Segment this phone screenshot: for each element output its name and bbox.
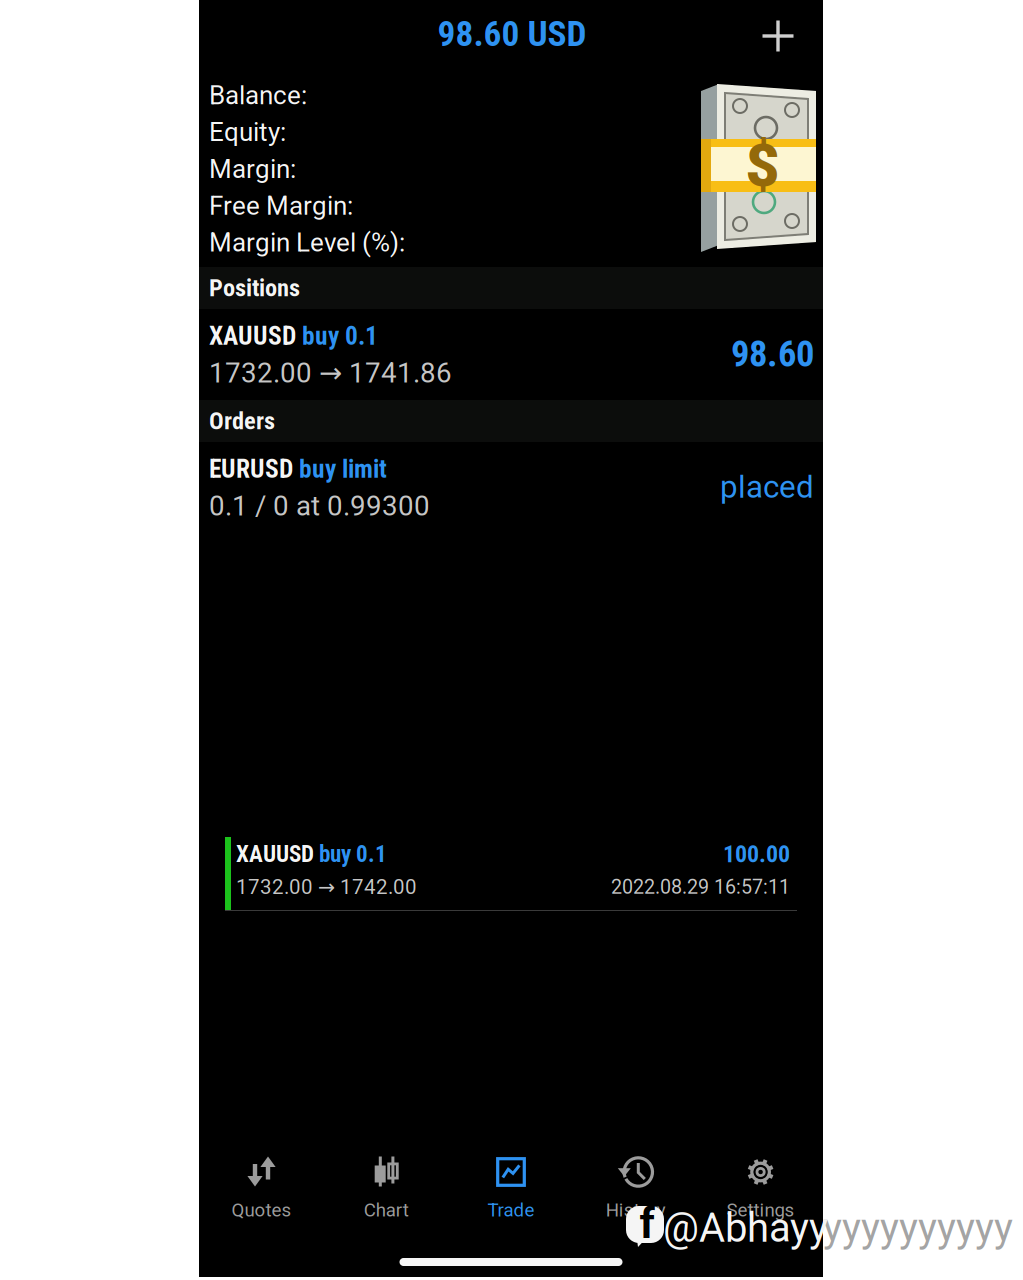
button[interactable]: EURUSD: [199, 442, 823, 533]
staticText: 0.1 / 0 at 0.99300: [209, 490, 430, 522]
button[interactable]: New order: [751, 9, 805, 63]
staticText: yyyyyyyyyy: [823, 1205, 1013, 1251]
button[interactable]: Settings: [698, 1147, 823, 1229]
staticText: $: [745, 132, 779, 200]
staticText: 1732.00 → 1742.00: [236, 875, 417, 899]
staticText: f: [639, 1198, 654, 1248]
staticText: Margin Level (%):: [209, 227, 405, 258]
button[interactable]: Quotes: [199, 1147, 324, 1229]
staticText: Positions: [209, 274, 300, 302]
staticText: @Abhayy: [663, 1205, 828, 1251]
staticText: Free Margin:: [209, 191, 353, 221]
staticText: XAUUSD: [209, 321, 296, 351]
staticText: Trade: [487, 1199, 534, 1221]
button[interactable]: Chart: [324, 1147, 449, 1229]
staticText: History: [606, 1199, 666, 1221]
staticText: EURUSD: [209, 454, 293, 484]
button[interactable]: History: [573, 1147, 698, 1229]
staticText: buy 0.1: [319, 840, 387, 867]
staticText: placed: [720, 469, 814, 505]
staticText: 2022.08.29 16:57:11: [611, 875, 790, 898]
staticText: 1732.00 → 1741.86: [209, 357, 452, 389]
staticText: Orders: [209, 407, 275, 435]
staticText: buy 0.1: [302, 321, 378, 351]
button[interactable]: XAUUSD: [225, 837, 797, 911]
staticText: buy limit: [299, 454, 387, 484]
staticText: 98.60 USD: [437, 13, 586, 55]
staticText: Settings: [727, 1199, 795, 1221]
staticText: 100.00: [723, 840, 790, 868]
staticText: Quotes: [231, 1199, 291, 1221]
staticText: Equity:: [209, 117, 286, 147]
staticText: XAUUSD: [236, 840, 314, 867]
staticText: Balance:: [209, 80, 307, 111]
staticText: 98.60: [731, 333, 814, 375]
staticText: Margin:: [209, 154, 296, 184]
staticText: Chart: [364, 1199, 409, 1221]
button[interactable]: XAUUSD: [199, 309, 823, 400]
button[interactable]: Trade: [449, 1147, 573, 1229]
